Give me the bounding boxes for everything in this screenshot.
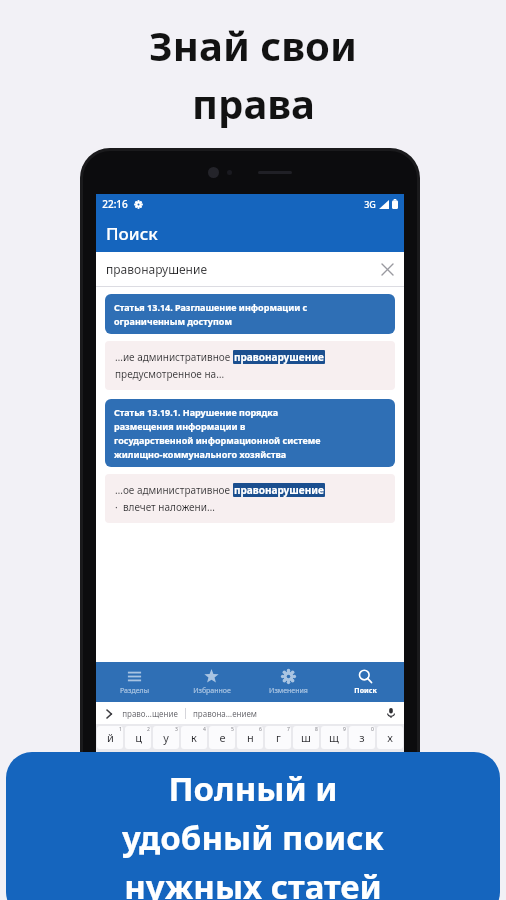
staticText: правона…ением — [193, 708, 257, 719]
button[interactable] — [235, 778, 267, 788]
button[interactable]: Разделы — [96, 662, 173, 702]
button[interactable]: правона…ением — [193, 708, 257, 719]
staticText: 1 — [119, 726, 122, 733]
staticText: з — [359, 730, 365, 745]
staticText: к — [191, 730, 197, 745]
button[interactable]: щ — [321, 726, 347, 749]
staticText: ш — [301, 730, 311, 745]
staticText: н — [247, 730, 254, 745]
button[interactable]: Изменения — [250, 662, 327, 702]
staticText: е — [219, 730, 226, 745]
button[interactable]: Голосовой ввод — [383, 705, 399, 721]
staticText: жилищно-коммунального хозяйства — [114, 448, 287, 460]
staticText: 5 — [231, 726, 234, 733]
staticText: 0 — [371, 726, 374, 733]
staticText: …ие административное — [115, 350, 233, 364]
staticText: Изменения — [269, 686, 308, 696]
button[interactable]: ц — [125, 726, 151, 749]
staticText: ц — [135, 730, 142, 745]
button[interactable]: н — [237, 726, 263, 749]
button[interactable]: Поиск — [327, 662, 404, 702]
button[interactable]: Статья 13.19.1. Нарушение порядка — [105, 399, 395, 467]
staticText: 22:16 — [102, 197, 128, 211]
staticText: нужных статей — [124, 864, 382, 900]
staticText: правонарушение — [234, 350, 324, 364]
button[interactable]: …ое административное — [105, 474, 395, 523]
button[interactable] — [201, 778, 233, 788]
button[interactable]: Очистить — [378, 260, 396, 278]
staticText: Статья 13.14. Разглашение информации с — [114, 301, 308, 313]
staticText: 3G — [364, 198, 376, 210]
button[interactable]: е — [209, 726, 235, 749]
staticText: правонарушение — [234, 483, 324, 497]
staticText: 2 — [147, 726, 150, 733]
button[interactable] — [269, 778, 301, 788]
button[interactable]: х — [377, 726, 403, 749]
staticText: щ — [329, 730, 339, 745]
staticText: ограниченным доступом — [114, 315, 232, 327]
staticText: Избранное — [193, 686, 231, 696]
staticText: 4 — [203, 726, 206, 733]
button[interactable]: у — [153, 726, 179, 749]
staticText: 7 — [287, 726, 290, 733]
button[interactable]: к — [181, 726, 207, 749]
staticText: у — [163, 730, 169, 745]
staticText: 3 — [175, 726, 178, 733]
button[interactable]: правонарушение — [96, 252, 404, 286]
staticText: 9 — [343, 726, 346, 733]
staticText: …ое административное — [115, 483, 233, 497]
button[interactable] — [303, 778, 335, 788]
staticText: право…щение — [122, 708, 178, 719]
button[interactable]: г — [265, 726, 291, 749]
button[interactable]: з — [349, 726, 375, 749]
button[interactable]: Больше вариантов — [101, 706, 116, 721]
staticText: предусмотренное на… — [115, 367, 225, 381]
staticText: государственной информационной системе — [114, 434, 321, 446]
staticText: · влечет наложени… — [115, 500, 215, 514]
staticText: г — [276, 730, 281, 745]
button[interactable] — [167, 778, 199, 788]
staticText: Поиск — [354, 686, 377, 696]
button[interactable]: право…щение — [122, 708, 178, 719]
button[interactable]: Поиск — [96, 214, 404, 252]
staticText: Поиск — [106, 222, 158, 245]
button[interactable]: ш — [293, 726, 319, 749]
button[interactable]: й — [97, 726, 123, 749]
button[interactable]: …ие административное — [105, 341, 395, 390]
button[interactable]: Полный и — [6, 752, 500, 900]
staticText: Знай свои — [149, 18, 357, 72]
staticText: удобный поиск — [122, 815, 384, 860]
staticText: й — [107, 730, 114, 745]
staticText: 8 — [315, 726, 318, 733]
button[interactable]: Избранное — [173, 662, 250, 702]
button[interactable]: Статья 13.14. Разглашение информации с — [105, 294, 395, 334]
staticText: Разделы — [120, 686, 149, 696]
staticText: права — [192, 76, 315, 130]
